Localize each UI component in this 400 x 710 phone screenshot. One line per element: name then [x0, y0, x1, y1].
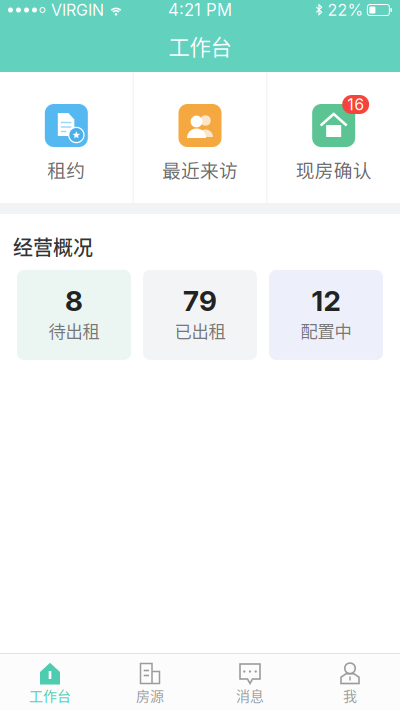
staticText: 现房确认 — [296, 156, 372, 183]
staticText: 8 — [65, 284, 83, 318]
staticText: 12 — [311, 284, 340, 318]
staticText: 租约 — [47, 156, 85, 183]
staticText: 22% — [327, 0, 363, 20]
staticText: 16 — [347, 95, 364, 114]
button[interactable]: 消息 — [200, 662, 300, 705]
staticText: VIRGIN — [51, 0, 104, 20]
staticText: 79 — [183, 284, 217, 318]
staticText: 经营概况 — [13, 232, 93, 261]
staticText: 已出租 — [174, 318, 225, 343]
staticText: 消息 — [236, 685, 264, 705]
staticText: 配置中 — [300, 318, 351, 343]
button[interactable]: 16 — [267, 72, 400, 203]
staticText: 工作台 — [168, 31, 231, 61]
staticText: 4:21 PM — [168, 0, 232, 20]
staticText: 房源 — [136, 685, 164, 705]
button[interactable]: 工作台 — [0, 662, 100, 705]
button[interactable]: 8 — [17, 270, 131, 360]
staticText: 我 — [343, 685, 357, 705]
button[interactable]: 79 — [143, 270, 257, 360]
button[interactable]: 租约 — [0, 72, 133, 203]
staticText: 待出租 — [48, 318, 99, 343]
button[interactable]: 最近来访 — [134, 72, 266, 203]
button[interactable]: 我 — [300, 662, 400, 705]
button[interactable]: 12 — [269, 270, 383, 360]
button[interactable]: 房源 — [100, 662, 200, 705]
staticText: 最近来访 — [162, 156, 238, 183]
staticText: 工作台 — [29, 685, 71, 705]
